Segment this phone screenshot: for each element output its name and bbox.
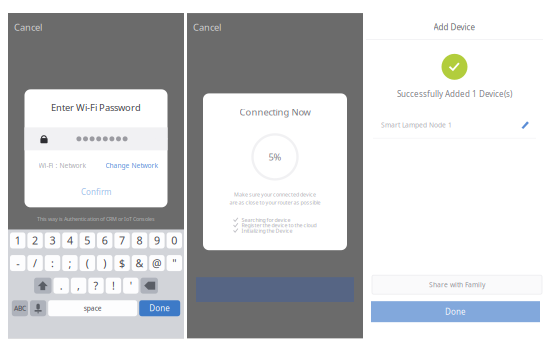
button[interactable]: 0	[167, 232, 182, 248]
staticText: 5	[84, 233, 90, 248]
staticText: .	[60, 279, 63, 293]
button[interactable]: .	[53, 278, 69, 294]
button[interactable]: $	[114, 255, 130, 271]
staticText: Smart Lamped Node 1	[381, 120, 452, 129]
button[interactable]: Done	[371, 301, 540, 322]
staticText: ABC	[14, 304, 26, 313]
staticText: 7	[119, 233, 125, 248]
button[interactable]: (	[80, 255, 95, 271]
staticText: are as close to your router as possible	[229, 199, 320, 206]
staticText: &	[135, 256, 143, 270]
button[interactable]: Shift	[34, 278, 51, 294]
button[interactable]: Share with Family	[372, 275, 542, 294]
staticText: Register the device to the cloud	[241, 222, 316, 229]
staticText: Change Network	[105, 161, 158, 170]
staticText: (	[86, 256, 89, 270]
staticText: Cancel	[193, 21, 221, 33]
staticText: Done	[445, 306, 466, 317]
staticText: Add Device	[433, 22, 475, 32]
button[interactable]: Backspace	[140, 278, 158, 294]
button[interactable]: Done	[139, 300, 180, 316]
button[interactable]: -	[10, 255, 25, 271]
button[interactable]: "	[167, 255, 182, 271]
staticText: This way is Authentication of CRM or IoT…	[37, 215, 155, 222]
staticText: Share with Family	[429, 280, 485, 289]
staticText: "	[172, 256, 176, 270]
staticText: @	[152, 256, 162, 270]
staticText: )	[103, 256, 106, 270]
button[interactable]: Dictate	[30, 300, 46, 316]
button[interactable]: Change Network	[105, 161, 158, 170]
button[interactable]: ?	[88, 278, 104, 294]
staticText: 5%	[268, 151, 281, 163]
staticText: ,	[77, 279, 80, 293]
button[interactable]: Edit device name	[521, 120, 530, 130]
staticText: Successfully Added 1 Device(s)	[397, 88, 512, 99]
staticText: 2	[32, 233, 38, 248]
button[interactable]: )	[97, 255, 112, 271]
button[interactable]: 9	[149, 232, 165, 248]
staticText: 6	[102, 233, 108, 248]
button[interactable]: '	[123, 278, 138, 294]
button[interactable]: 1	[10, 232, 25, 248]
staticText: Confirm	[81, 186, 111, 197]
staticText: /	[33, 256, 37, 270]
button[interactable]: /	[27, 255, 43, 271]
staticText: Wi-Fi : Network	[38, 161, 86, 170]
staticText: Searching for device	[241, 216, 290, 223]
button[interactable]: Cancel	[8, 18, 42, 36]
staticText: Done	[149, 303, 170, 313]
staticText: Enter Wi-Fi Password	[51, 101, 141, 114]
staticText: $	[119, 256, 125, 270]
button[interactable]: ABC	[12, 300, 28, 316]
staticText: Connecting Now	[239, 106, 310, 118]
button[interactable]: Confirm	[81, 169, 111, 207]
button[interactable]: !	[106, 278, 121, 294]
button[interactable]: @	[149, 255, 165, 271]
button[interactable]: 6	[97, 232, 112, 248]
button[interactable]: :	[45, 255, 60, 271]
staticText: space	[84, 304, 102, 313]
button[interactable]: Cancel	[187, 18, 221, 36]
button[interactable]: 4	[62, 232, 78, 248]
staticText: !	[112, 279, 115, 293]
staticText: 0	[171, 233, 177, 248]
button[interactable]: 2	[27, 232, 43, 248]
button[interactable]: 5	[80, 232, 95, 248]
button[interactable]: 3	[45, 232, 60, 248]
staticText: 4	[67, 233, 73, 248]
staticText: 3	[49, 233, 55, 248]
staticText: -	[16, 256, 19, 270]
staticText: Cancel	[14, 21, 42, 33]
button[interactable]: 7	[114, 232, 130, 248]
button[interactable]: space	[48, 300, 137, 316]
staticText: '	[130, 279, 132, 293]
button[interactable]: 8	[132, 232, 147, 248]
button[interactable]: ;	[62, 255, 78, 271]
staticText: 9	[154, 233, 160, 248]
staticText: ?	[93, 279, 98, 293]
staticText: Initializing the Device	[241, 227, 292, 234]
staticText: 1	[15, 233, 21, 248]
button[interactable]: &	[132, 255, 147, 271]
staticText: Make sure your connected device	[234, 191, 316, 198]
button[interactable]: ,	[71, 278, 86, 294]
staticText: ;	[68, 256, 71, 270]
staticText: :	[51, 256, 54, 270]
staticText: 8	[136, 233, 142, 248]
